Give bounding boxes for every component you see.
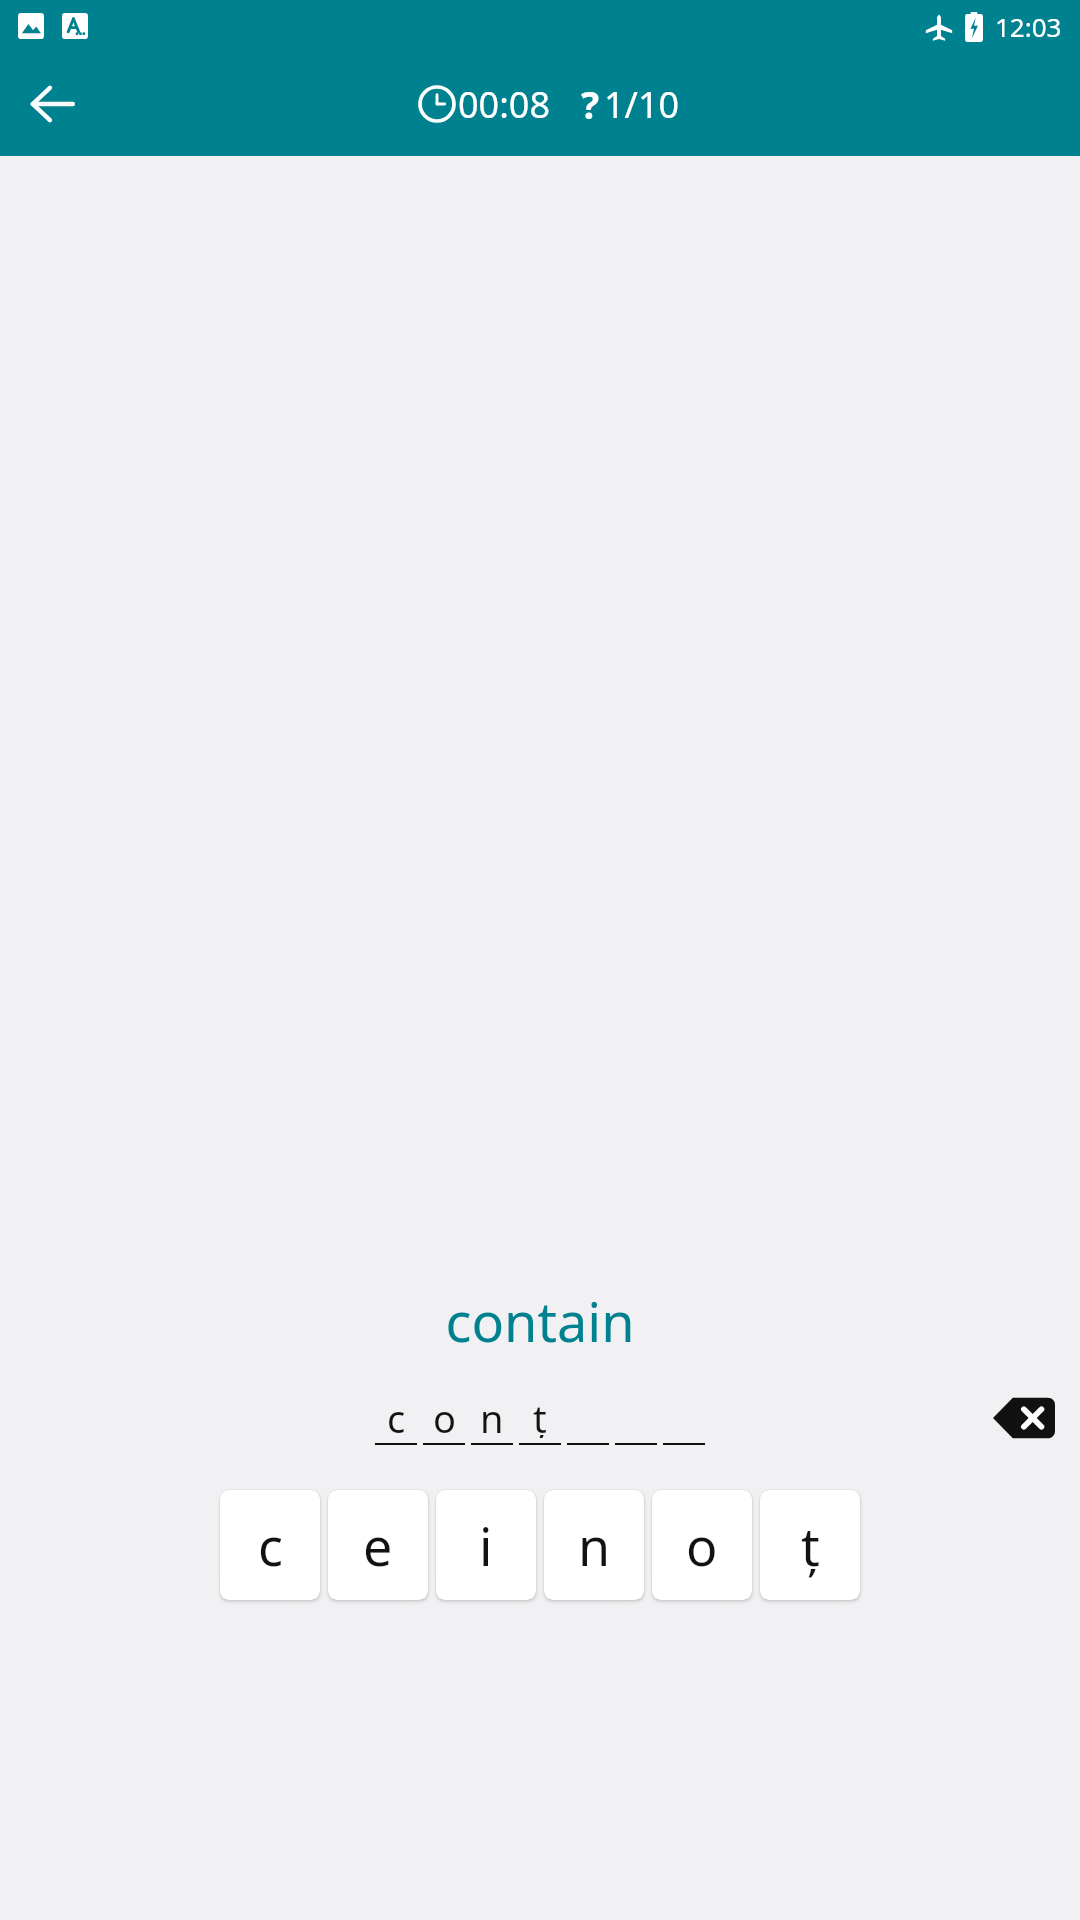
staticText: 12:03 <box>995 9 1062 44</box>
staticText: contain <box>0 1284 1080 1358</box>
staticText: 00:08 <box>458 80 551 129</box>
button[interactable]: Back <box>10 62 94 146</box>
staticText: o <box>433 1392 456 1438</box>
staticText: ț <box>801 1510 820 1581</box>
button[interactable]: c <box>220 1490 320 1600</box>
staticText: c <box>387 1392 406 1438</box>
staticText: n <box>480 1392 504 1438</box>
button[interactable]: Backspace <box>986 1380 1062 1456</box>
staticText: o <box>686 1510 718 1581</box>
button[interactable]: i <box>436 1490 536 1600</box>
button[interactable]: e <box>328 1490 428 1600</box>
staticText: i <box>479 1510 493 1581</box>
button[interactable]: ț <box>760 1490 860 1600</box>
button[interactable]: o <box>652 1490 752 1600</box>
staticText: 1/10 <box>604 80 680 129</box>
staticText: ț <box>533 1392 547 1438</box>
staticText: c <box>258 1510 283 1581</box>
staticText: e <box>363 1510 393 1581</box>
button[interactable]: n <box>544 1490 644 1600</box>
staticText: n <box>578 1510 611 1581</box>
staticText: ? <box>581 78 600 130</box>
